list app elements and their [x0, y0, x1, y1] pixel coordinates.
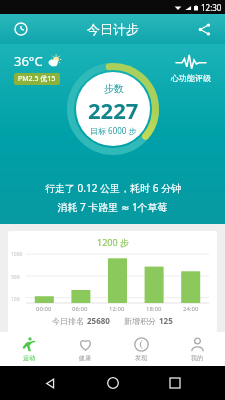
button[interactable]: History — [10, 18, 32, 40]
staticText: 运动 — [23, 354, 35, 362]
staticText: 2227 — [88, 95, 139, 125]
button[interactable]: 心功能评级 — [171, 54, 211, 83]
staticText: 00:00 — [36, 305, 52, 313]
staticText: 1200 步 — [97, 236, 129, 248]
staticText: 25680 — [87, 315, 110, 326]
staticText: 18:00 — [146, 305, 162, 313]
button[interactable]: Back — [38, 371, 62, 395]
button[interactable]: Share — [193, 18, 215, 40]
staticText: PM2.5 优15 — [18, 74, 56, 84]
button[interactable]: 运动 — [0, 332, 57, 366]
staticText: 今日计步 — [87, 21, 139, 37]
staticText: 24:00 — [183, 305, 199, 313]
staticText: 06:00 — [72, 305, 88, 313]
button[interactable]: 健康 — [57, 332, 113, 366]
button[interactable]: Recents — [163, 371, 187, 395]
staticText: 目标 6000 步 — [90, 125, 137, 136]
staticText: 消耗 7 卡路里 ≈ 1个草莓 — [57, 200, 168, 214]
staticText: 步数 — [104, 82, 124, 95]
staticText: 125 — [159, 315, 173, 326]
staticText: 1000 — [11, 251, 23, 258]
button[interactable]: 1200 步 — [8, 231, 217, 332]
staticText: 36°C — [14, 52, 43, 70]
button[interactable]: 我的 — [169, 332, 225, 366]
button[interactable]: Home — [101, 371, 125, 395]
staticText: 健康 — [79, 354, 91, 362]
staticText: 12:30 — [201, 2, 222, 13]
staticText: 今日排名 — [52, 315, 87, 326]
staticText: 行走了 0.12 公里，耗时 6 分钟 — [45, 181, 181, 195]
staticText: 12:00 — [109, 305, 125, 313]
staticText: 我的 — [191, 354, 203, 362]
staticText: 发现 — [135, 354, 147, 362]
button[interactable]: 发现 — [113, 332, 169, 366]
staticText: 新增积分 — [124, 315, 159, 326]
staticText: 500 — [11, 274, 20, 281]
staticText: 100 — [11, 296, 20, 303]
staticText: 心功能评级 — [171, 73, 211, 83]
